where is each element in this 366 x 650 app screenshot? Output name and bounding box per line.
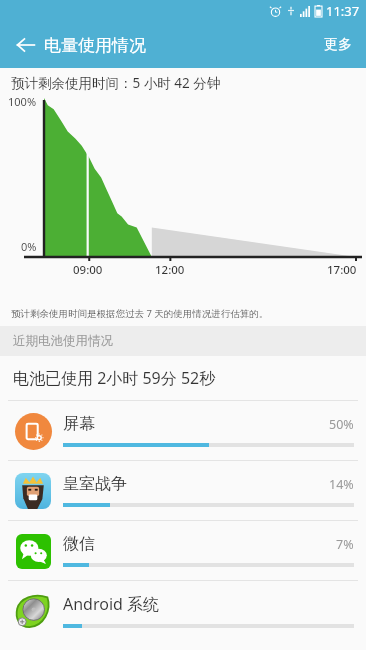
staticText: 50% bbox=[329, 416, 354, 433]
staticText: 更多 bbox=[324, 36, 352, 54]
staticText: 17:00 bbox=[327, 262, 357, 278]
button[interactable]: 微信 bbox=[0, 521, 366, 580]
staticText: 预计剩余使用时间：5 小时 42 分钟 bbox=[11, 74, 221, 92]
button[interactable]: 皇室战争 bbox=[0, 461, 366, 520]
staticText: 微信 bbox=[63, 534, 336, 554]
staticText: 11:37 bbox=[326, 2, 360, 20]
staticText: 皇室战争 bbox=[63, 474, 329, 494]
staticText: Android 系统 bbox=[63, 593, 354, 615]
staticText: 12:00 bbox=[155, 262, 185, 278]
button[interactable]: Android 系统 bbox=[0, 581, 366, 640]
staticText: 预计剩余使用时间是根据您过去 7 天的使用情况进行估算的。 bbox=[11, 307, 269, 320]
staticText: 屏幕 bbox=[63, 414, 329, 434]
button[interactable]: Back bbox=[6, 25, 46, 65]
staticText: 近期电池使用情况 bbox=[13, 333, 113, 349]
staticText: 09:00 bbox=[73, 262, 103, 278]
staticText: 7% bbox=[336, 536, 354, 553]
button[interactable]: 屏幕 bbox=[0, 401, 366, 460]
staticText: 0% bbox=[21, 239, 37, 254]
staticText: 100% bbox=[8, 94, 37, 109]
staticText: 电池已使用 2小时 59分 52秒 bbox=[13, 367, 216, 389]
button[interactable]: 更多 bbox=[310, 22, 366, 68]
staticText: 14% bbox=[329, 476, 354, 493]
staticText: 电量使用情况 bbox=[44, 35, 146, 56]
